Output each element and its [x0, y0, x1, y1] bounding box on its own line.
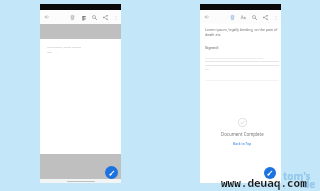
- staticText: Lorem ipsum, legally binding: [47, 45, 81, 48]
- staticText: tom's: [283, 169, 311, 183]
- button[interactable]: Share: [260, 11, 271, 24]
- button[interactable]: Edit document: [105, 166, 118, 179]
- button[interactable]: Highlight: [67, 11, 78, 24]
- staticText: and: [205, 68, 209, 71]
- button[interactable]: Share: [100, 11, 111, 24]
- staticText: www.deuaq.com: [221, 175, 307, 190]
- button[interactable]: Search: [89, 11, 100, 24]
- staticText: ide: [300, 177, 316, 191]
- staticText: Signed:: [205, 45, 219, 50]
- button[interactable]: Highlight: [227, 11, 238, 24]
- button[interactable]: Back to Top: [233, 141, 252, 146]
- button[interactable]: Back: [202, 10, 212, 24]
- staticText: Back to Top: [233, 141, 252, 146]
- button[interactable]: Edit document: [264, 167, 276, 179]
- button[interactable]: Font size: [238, 11, 249, 24]
- staticText: Document Complete: [221, 131, 264, 137]
- button[interactable]: Text format: [78, 11, 89, 24]
- staticText: Sign: [47, 50, 53, 53]
- staticText: Lorem ipsum, legally binding, on the pai…: [205, 27, 278, 37]
- button[interactable]: Back: [42, 10, 52, 24]
- staticText: the undersigned hereby agrees to all of …: [205, 57, 264, 60]
- button[interactable]: Search: [249, 11, 260, 24]
